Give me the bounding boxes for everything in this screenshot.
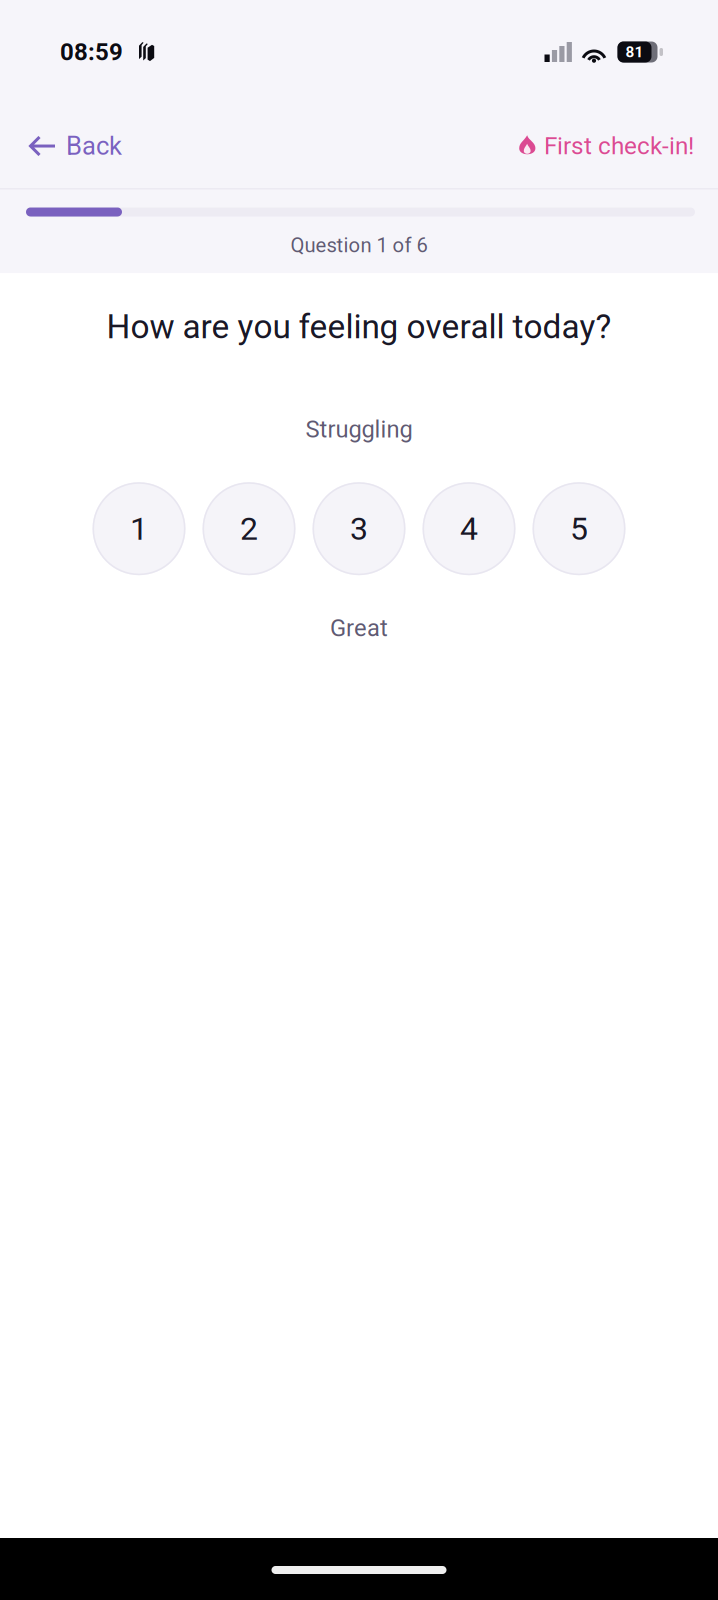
button[interactable]: Back bbox=[0, 104, 142, 188]
button[interactable]: 5 bbox=[532, 482, 625, 575]
button[interactable]: 1 bbox=[92, 482, 185, 575]
staticText: Great bbox=[330, 614, 388, 642]
button[interactable]: 4 bbox=[422, 482, 515, 575]
staticText: How are you feeling overall today? bbox=[106, 307, 611, 346]
button[interactable]: First check-in! bbox=[519, 104, 718, 188]
staticText: 3 bbox=[350, 510, 368, 547]
staticText: 08:59 bbox=[60, 38, 123, 66]
staticText: 5 bbox=[570, 510, 588, 547]
staticText: Back bbox=[66, 131, 122, 161]
button[interactable]: 3 bbox=[312, 482, 405, 575]
staticText: 1 bbox=[130, 510, 148, 547]
staticText: 81 bbox=[625, 43, 643, 61]
staticText: First check-in! bbox=[544, 132, 694, 160]
staticText: Struggling bbox=[305, 415, 412, 443]
staticText: 4 bbox=[460, 510, 478, 547]
staticText: 2 bbox=[240, 510, 258, 547]
button[interactable]: 2 bbox=[202, 482, 295, 575]
staticText: Question 1 of 6 bbox=[290, 233, 427, 257]
